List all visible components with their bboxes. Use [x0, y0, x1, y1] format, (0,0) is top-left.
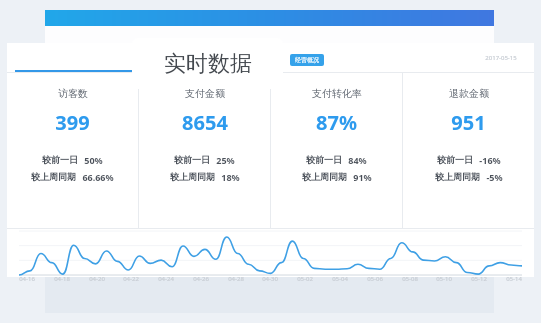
staticText: 04-18 [54, 275, 70, 283]
staticText: 04-24 [158, 275, 174, 283]
staticText: 05-06 [367, 275, 383, 283]
staticText: 较上周同期 [31, 171, 76, 182]
staticText: 399 [55, 109, 90, 136]
button[interactable]: 访客数 [7, 73, 138, 183]
staticText: 04-28 [228, 275, 244, 283]
staticText: 87% [316, 109, 357, 136]
staticText: 05-14 [506, 275, 522, 283]
staticText: 访客数 [58, 87, 88, 100]
staticText: 04-26 [193, 275, 209, 283]
staticText: 较前一日 [174, 154, 210, 165]
staticText: 较前一日 [437, 154, 473, 165]
staticText: 较上周同期 [435, 171, 480, 182]
staticText: 18% [221, 171, 240, 183]
staticText: 91% [353, 171, 372, 183]
staticText: 实时数据 [164, 50, 252, 78]
button[interactable]: 退款金额 [403, 73, 534, 183]
button[interactable]: 支付转化率 [271, 73, 402, 183]
staticText: 951 [451, 109, 486, 136]
staticText: 25% [216, 154, 235, 166]
button[interactable]: 支付金额 [139, 73, 270, 183]
staticText: 支付转化率 [312, 87, 362, 100]
button[interactable]: 经营概况 [290, 54, 324, 66]
staticText: 较前一日 [306, 154, 342, 165]
staticText: -5% [486, 171, 503, 183]
staticText: 05-10 [436, 275, 452, 283]
staticText: 较上周同期 [170, 171, 215, 182]
staticText: 05-08 [402, 275, 418, 283]
staticText: 05-02 [297, 275, 313, 283]
staticText: 较上周同期 [302, 171, 347, 182]
staticText: 04-16 [19, 275, 35, 283]
staticText: 较前一日 [42, 154, 78, 165]
button[interactable]: 实时数据 [132, 38, 283, 89]
staticText: 50% [84, 154, 103, 166]
staticText: 经营概况 [295, 56, 319, 64]
staticText: 84% [348, 154, 367, 166]
staticText: 8654 [182, 109, 228, 136]
staticText: 支付金额 [185, 87, 225, 100]
staticText: 退款金额 [449, 87, 489, 100]
staticText: 05-04 [332, 275, 348, 283]
staticText: 66.66% [82, 171, 114, 183]
staticText: 05-12 [471, 275, 487, 283]
staticText: 04-22 [123, 275, 139, 283]
staticText: -16% [479, 154, 501, 166]
staticText: 2017-05-15 [485, 54, 517, 62]
staticText: 04-30 [262, 275, 278, 283]
staticText: 04-20 [89, 275, 105, 283]
